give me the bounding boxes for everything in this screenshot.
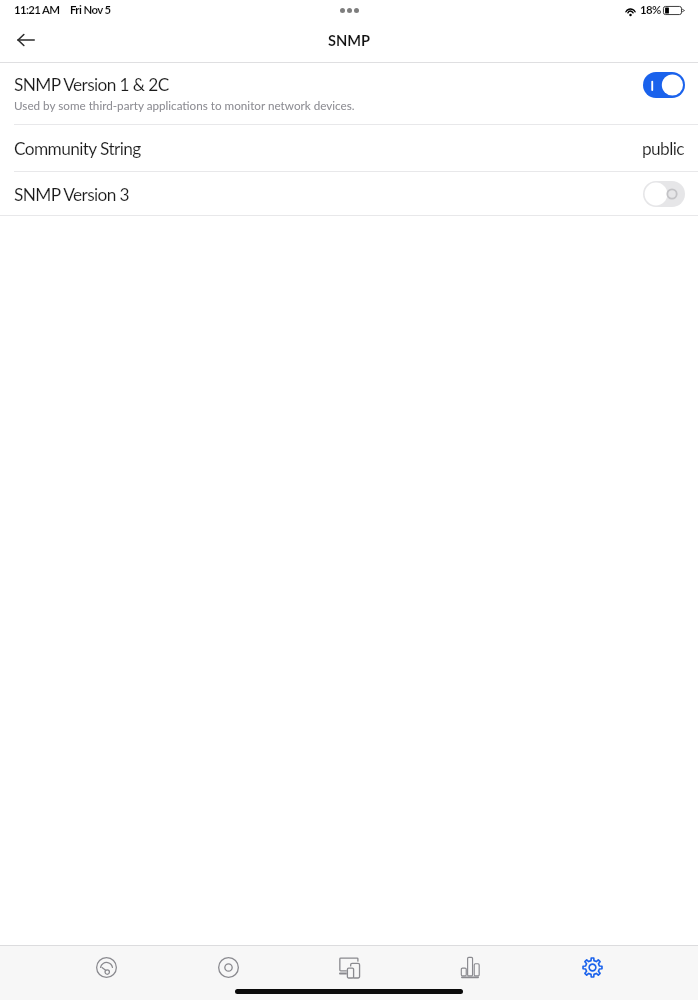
staticText: SNMP Version 1 & 2C — [14, 74, 169, 95]
staticText: SNMP Version 3 — [14, 184, 643, 205]
staticText: Community String — [14, 138, 642, 159]
staticText: public — [642, 138, 684, 159]
button[interactable]: SNMP Version 3 — [0, 172, 698, 215]
button[interactable]: Devices — [327, 946, 371, 989]
button[interactable]: Discover — [206, 946, 250, 989]
button[interactable]: Community String — [0, 125, 698, 171]
button[interactable]: Statistics — [449, 946, 493, 989]
button[interactable]: SNMP Version 3 toggle, off — [643, 181, 685, 207]
button[interactable]: Speed test — [84, 946, 128, 989]
button[interactable]: Back — [7, 21, 44, 58]
button[interactable]: Settings — [570, 946, 614, 989]
staticText: 18% — [640, 3, 661, 17]
staticText: Used by some third-party applications to… — [14, 98, 355, 112]
staticText: Fri Nov 5 — [70, 3, 111, 17]
staticText: 11:21 AM — [14, 3, 60, 17]
button[interactable]: SNMP Version 1 and 2C toggle, on — [643, 72, 685, 98]
button[interactable]: SNMP Version 1 & 2C — [0, 63, 698, 124]
staticText: SNMP — [328, 32, 371, 50]
